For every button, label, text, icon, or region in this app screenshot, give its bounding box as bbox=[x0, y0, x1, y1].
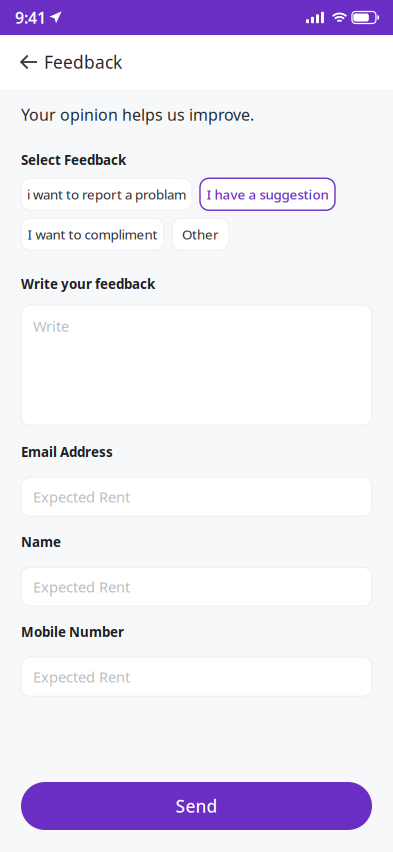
staticText: Send bbox=[175, 794, 217, 817]
staticText: Other bbox=[182, 225, 219, 243]
button[interactable]: i want to report a problam bbox=[21, 178, 192, 210]
button[interactable]: Write bbox=[21, 305, 372, 425]
staticText: Write bbox=[33, 316, 69, 336]
button[interactable]: Back bbox=[0, 37, 44, 87]
button[interactable]: Expected Rent bbox=[21, 657, 372, 696]
staticText: I want to compliment bbox=[27, 225, 157, 243]
staticText: i want to report a problam bbox=[27, 185, 186, 203]
button[interactable]: Other bbox=[172, 218, 229, 250]
button[interactable]: Expected Rent bbox=[21, 567, 372, 606]
staticText: Feedback bbox=[44, 50, 122, 73]
staticText: Your opinion helps us improve. bbox=[21, 104, 254, 125]
staticText: Name bbox=[21, 533, 61, 551]
staticText: Expected Rent bbox=[33, 667, 130, 686]
staticText: Expected Rent bbox=[33, 577, 130, 596]
button[interactable]: I have a suggestion bbox=[200, 178, 335, 210]
staticText: Expected Rent bbox=[33, 487, 130, 506]
button[interactable]: Expected Rent bbox=[21, 477, 372, 516]
button[interactable]: Send bbox=[21, 782, 372, 830]
staticText: Mobile Number bbox=[21, 623, 124, 641]
button[interactable]: I want to compliment bbox=[21, 218, 164, 250]
staticText: 9:41 bbox=[15, 7, 46, 28]
staticText: Write your feedback bbox=[21, 275, 155, 293]
staticText: Select Feedback bbox=[21, 151, 126, 169]
staticText: Email Address bbox=[21, 443, 113, 461]
staticText: I have a suggestion bbox=[206, 185, 328, 203]
